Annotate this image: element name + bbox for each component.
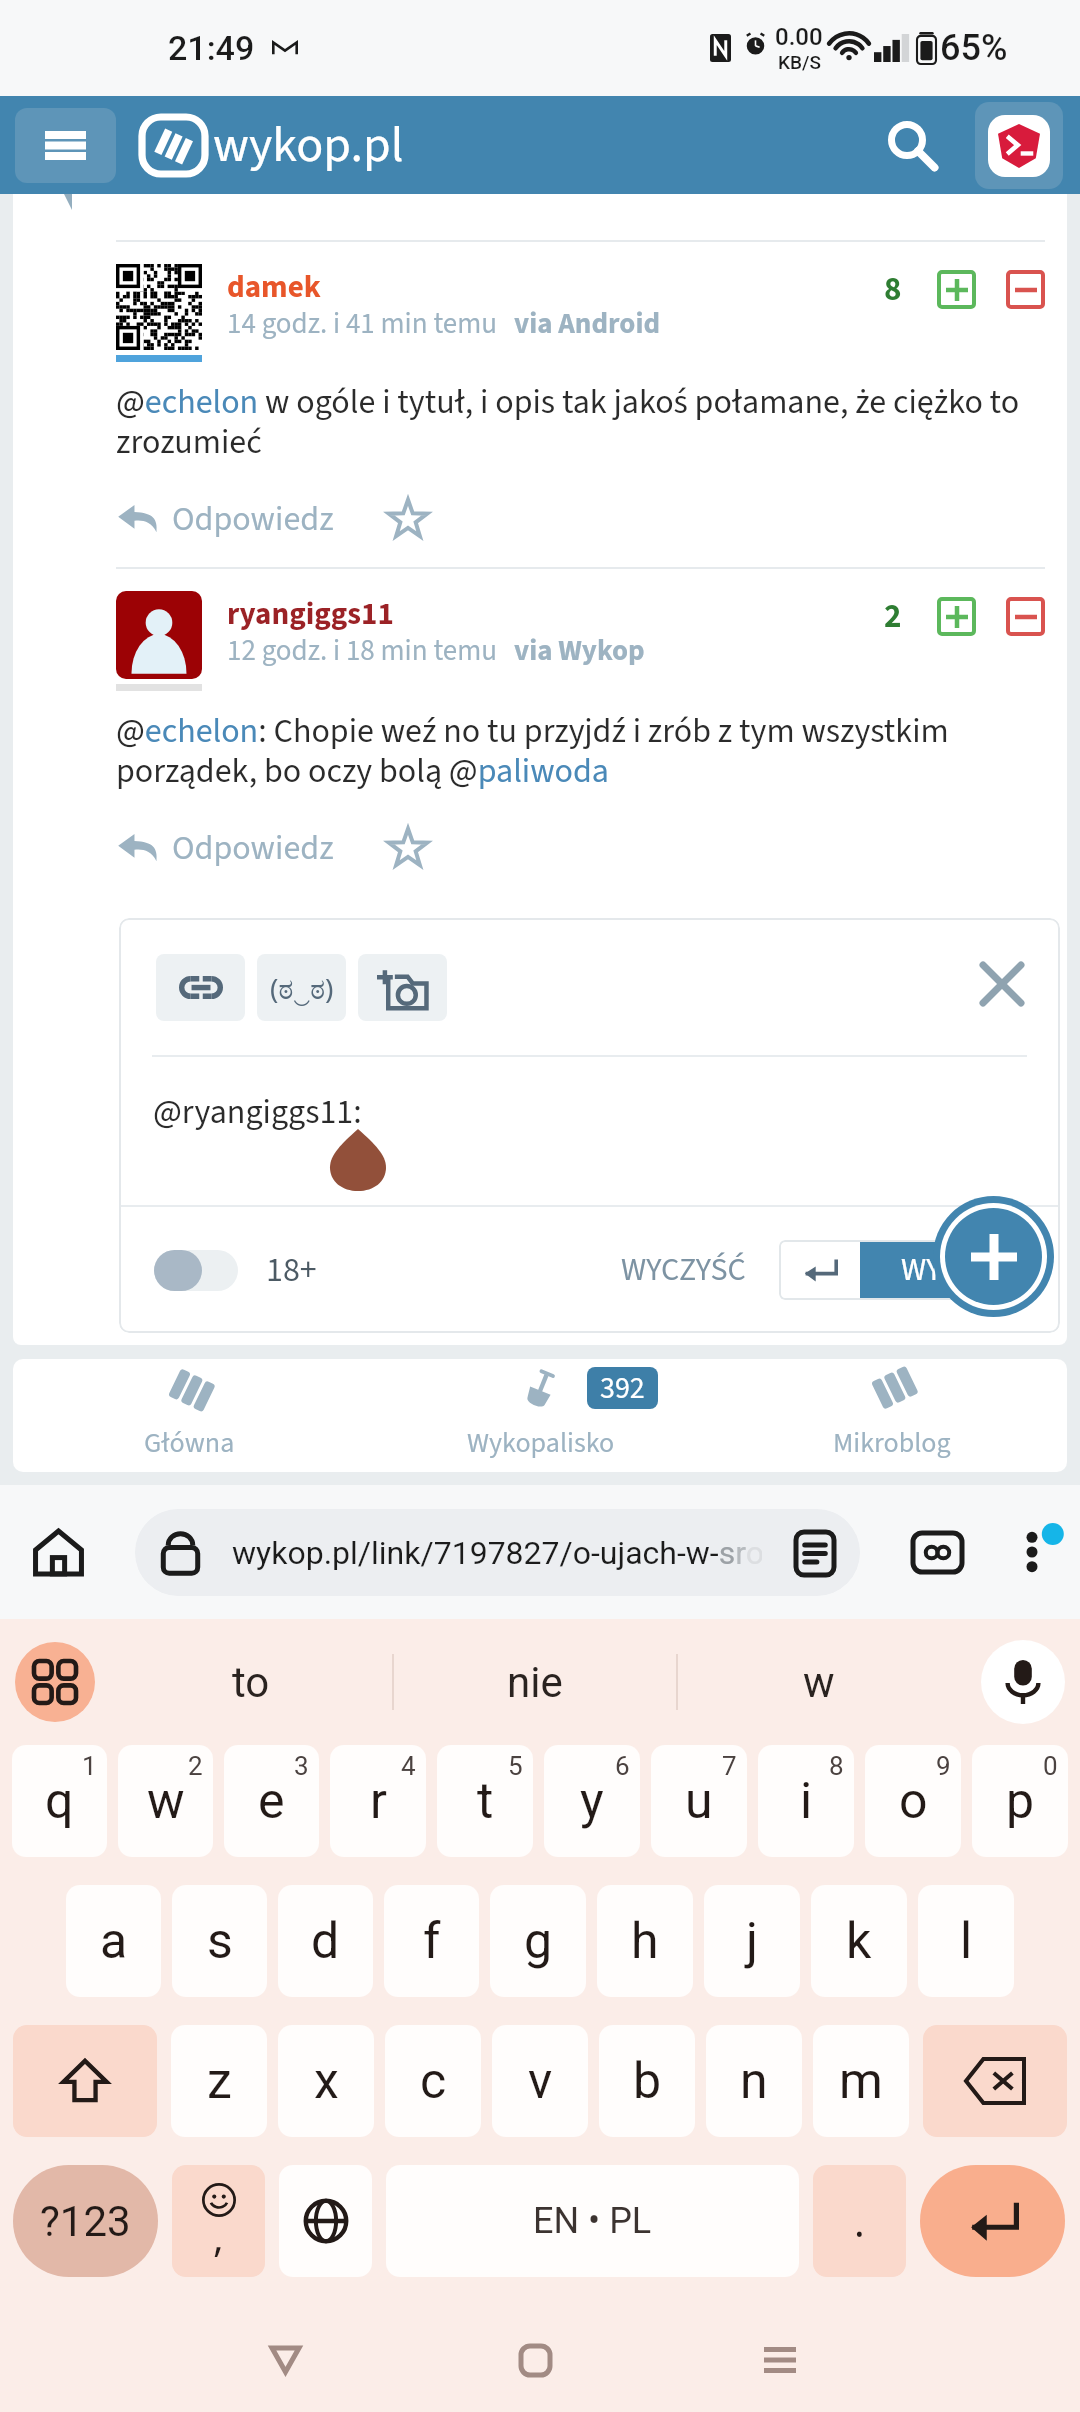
- staticText: 0: [1043, 1751, 1058, 1781]
- staticText: Wykopalisko: [467, 1423, 615, 1463]
- button[interactable]: r: [330, 1745, 426, 1857]
- button[interactable]: Wykopalisko: [365, 1359, 716, 1472]
- button[interactable]: nie: [394, 1619, 676, 1745]
- button[interactable]: EN • PL: [386, 2165, 799, 2277]
- button[interactable]: Upvote: [937, 597, 976, 636]
- staticText: Odpowiedz: [172, 824, 334, 872]
- button[interactable]: v: [492, 2025, 588, 2137]
- button[interactable]: Favourite: [382, 822, 434, 874]
- button[interactable]: w: [678, 1619, 960, 1745]
- button[interactable]: Favourite: [382, 493, 434, 545]
- button[interactable]: wykop.pl/link/7197827/o-ujach-w-sro: [135, 1509, 860, 1596]
- button[interactable]: Menu: [15, 108, 116, 183]
- staticText: n: [740, 2052, 768, 2111]
- staticText: l: [960, 1912, 973, 1971]
- button[interactable]: o: [865, 1745, 961, 1857]
- button[interactable]: WYCZYŚĆ: [621, 1247, 746, 1293]
- button[interactable]: a: [66, 1885, 161, 1997]
- button[interactable]: .: [813, 2165, 906, 2277]
- button[interactable]: Change language: [279, 2165, 372, 2277]
- staticText: damek: [227, 265, 321, 309]
- button[interactable]: Backspace: [923, 2025, 1067, 2137]
- staticText: 18+: [266, 1246, 317, 1294]
- button[interactable]: n: [706, 2025, 802, 2137]
- staticText: wykop.pl: [213, 110, 404, 181]
- button[interactable]: More options: [1000, 1516, 1072, 1588]
- button[interactable]: m: [813, 2025, 909, 2137]
- button[interactable]: Tabs: [897, 1512, 977, 1592]
- button[interactable]: p: [972, 1745, 1068, 1857]
- button[interactable]: k: [811, 1885, 907, 1997]
- button[interactable]: Home: [455, 2310, 615, 2412]
- button[interactable]: Clipboard: [15, 1642, 95, 1722]
- staticText: 7: [722, 1751, 737, 1781]
- button[interactable]: e: [224, 1745, 319, 1857]
- button[interactable]: g: [490, 1885, 586, 1997]
- button[interactable]: l: [918, 1885, 1014, 1997]
- button[interactable]: Odpowiedz: [116, 822, 334, 874]
- button[interactable]: j: [704, 1885, 800, 1997]
- staticText: @echelon w ogóle i tytuł, i opis tak jak…: [116, 378, 1045, 467]
- staticText: e: [258, 1772, 285, 1831]
- button[interactable]: Add comment: [933, 1196, 1054, 1317]
- staticText: 12 godz. i 18 min temu: [227, 630, 498, 671]
- button[interactable]: y: [544, 1745, 640, 1857]
- button[interactable]: Voice input: [981, 1640, 1065, 1724]
- button[interactable]: Główna: [13, 1359, 365, 1472]
- button[interactable]: Downvote: [1006, 270, 1045, 309]
- button[interactable]: Reader mode: [780, 1518, 850, 1588]
- staticText: Główna: [144, 1423, 235, 1463]
- button[interactable]: q: [12, 1745, 107, 1857]
- staticText: j: [746, 1912, 758, 1971]
- staticText: q: [45, 1772, 74, 1831]
- staticText: 8: [884, 266, 902, 313]
- staticText: to: [232, 1658, 270, 1707]
- staticText: KB/S: [778, 51, 821, 73]
- button[interactable]: h: [597, 1885, 693, 1997]
- button[interactable]: Enter: [920, 2165, 1065, 2277]
- staticText: p: [1006, 1772, 1035, 1831]
- button[interactable]: s: [172, 1885, 267, 1997]
- staticText: m: [839, 2052, 883, 2111]
- staticText: Odpowiedz: [172, 495, 334, 543]
- button[interactable]: i: [758, 1745, 854, 1857]
- button[interactable]: w: [118, 1745, 213, 1857]
- button[interactable]: Home: [18, 1512, 98, 1592]
- staticText: x: [314, 2052, 339, 2111]
- button[interactable]: b: [599, 2025, 695, 2137]
- button[interactable]: ?123: [13, 2165, 158, 2277]
- staticText: wykop.pl/link/7197827/o-ujach-w-sro: [232, 1534, 762, 1572]
- button[interactable]: Close: [974, 956, 1030, 1012]
- button[interactable]: 18 plus toggle: [154, 1250, 238, 1291]
- button[interactable]: t: [437, 1745, 533, 1857]
- button[interactable]: z: [171, 2025, 267, 2137]
- button[interactable]: Upvote: [937, 270, 976, 309]
- staticText: EN • PL: [533, 2200, 652, 2242]
- button[interactable]: u: [651, 1745, 747, 1857]
- button[interactable]: Search: [867, 100, 957, 190]
- button[interactable]: Mikroblog: [716, 1359, 1067, 1472]
- staticText: v: [528, 2052, 553, 2111]
- button[interactable]: Back: [205, 2310, 365, 2412]
- button[interactable]: Shift: [13, 2025, 157, 2137]
- button[interactable]: to: [110, 1619, 392, 1745]
- staticText: 392: [600, 1367, 645, 1409]
- button[interactable]: Add photo: [358, 954, 447, 1021]
- button[interactable]: Newline: [779, 1240, 860, 1300]
- staticText: (ಠ‿ಠ): [270, 969, 334, 1007]
- button[interactable]: Wykop app: [975, 102, 1063, 189]
- button[interactable]: Downvote: [1006, 597, 1045, 636]
- staticText: u: [685, 1772, 713, 1831]
- button[interactable]: Odpowiedz: [116, 493, 334, 545]
- staticText: a: [100, 1912, 128, 1971]
- button[interactable]: Emoji and comma: [172, 2165, 265, 2277]
- button[interactable]: f: [384, 1885, 479, 1997]
- staticText: c: [420, 2052, 447, 2111]
- button[interactable]: Recent apps: [700, 2310, 860, 2412]
- button[interactable]: x: [278, 2025, 374, 2137]
- button[interactable]: c: [385, 2025, 481, 2137]
- button[interactable]: d: [278, 1885, 373, 1997]
- button[interactable]: Insert emoticon: [257, 954, 346, 1021]
- button[interactable]: Insert link: [156, 954, 245, 1021]
- button[interactable]: WYŚLIJ: [860, 1240, 1038, 1300]
